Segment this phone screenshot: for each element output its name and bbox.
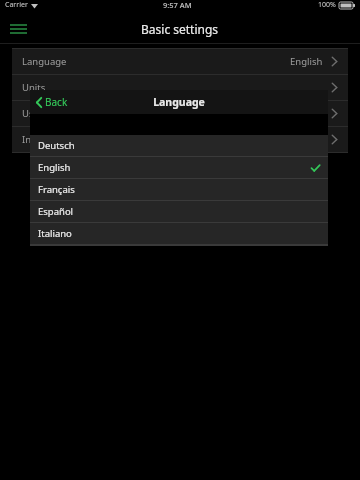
staticText: User data	[22, 107, 66, 120]
staticText: English	[290, 55, 323, 68]
button[interactable]: User data	[12, 101, 348, 126]
staticText: 9:57 AM	[163, 0, 192, 10]
staticText: Back	[45, 95, 68, 109]
button[interactable]: Back	[30, 92, 76, 112]
button[interactable]: Italiano	[30, 223, 328, 244]
staticText: Deutsch	[38, 139, 75, 152]
staticText: Carrier	[5, 0, 28, 10]
staticText: Français	[38, 183, 75, 196]
button[interactable]: Language	[12, 49, 348, 74]
button[interactable]: Français	[30, 179, 328, 200]
staticText: Language	[153, 95, 205, 109]
button[interactable]: English	[30, 157, 328, 178]
staticText: 100%	[318, 0, 336, 10]
button[interactable]: Español	[30, 201, 328, 222]
button[interactable]: Deutsch	[30, 135, 328, 156]
staticText: Italiano	[38, 227, 72, 240]
staticText: Español	[38, 205, 74, 218]
button[interactable]: Information	[12, 127, 348, 152]
staticText: English	[38, 161, 71, 174]
button[interactable]: Menu	[6, 17, 30, 41]
staticText: Basic settings	[141, 21, 219, 37]
button[interactable]: Units	[12, 75, 348, 100]
staticText: Information	[22, 133, 76, 146]
staticText: Language	[22, 55, 67, 68]
staticText: Units	[22, 81, 46, 94]
